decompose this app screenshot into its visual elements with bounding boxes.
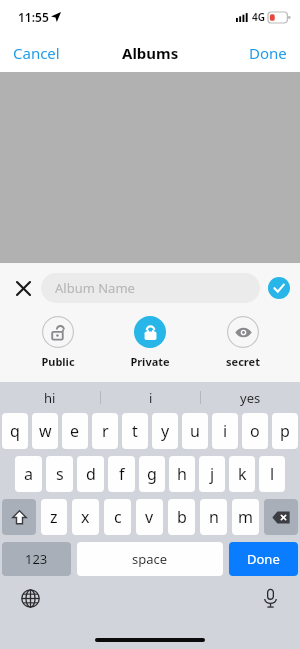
button[interactable]: space [77,542,223,576]
button[interactable]: i [212,413,238,449]
button[interactable]: Done [229,542,298,576]
staticText: e [70,420,80,442]
staticText: q [10,420,20,442]
button[interactable]: a [15,456,42,492]
staticText: l [270,463,275,485]
staticText: h [177,463,187,485]
button[interactable]: q [2,413,28,449]
button[interactable]: r [92,413,118,449]
staticText: z [50,506,58,528]
staticText: d [86,463,96,485]
button[interactable]: Backspace [264,499,298,535]
staticText: b [177,506,187,528]
button[interactable]: c [104,499,131,535]
button[interactable]: m [232,499,259,535]
staticText: p [280,420,290,442]
button[interactable]: j [199,456,225,492]
staticText: Private [130,354,170,369]
button[interactable]: Close [10,275,36,301]
staticText: Done [249,43,287,63]
button[interactable]: b [168,499,195,535]
button[interactable]: Shift [2,499,36,535]
button[interactable]: Change keyboard language [16,584,44,612]
staticText: Albums [122,43,179,63]
staticText: Done [247,550,280,568]
staticText: t [132,420,138,442]
button[interactable]: i [101,382,200,413]
staticText: g [147,463,157,485]
button[interactable]: Cancel [0,37,73,69]
staticText: 11:55 [18,9,49,25]
staticText: w [39,420,52,442]
staticText: f [119,463,125,485]
staticText: k [238,463,247,485]
staticText: 123 [25,550,48,568]
button[interactable]: l [259,456,285,492]
staticText: secret [226,354,260,369]
staticText: o [250,420,260,442]
button[interactable]: Private [115,316,185,369]
button[interactable]: yes [201,382,300,413]
button[interactable]: g [139,456,165,492]
button[interactable]: h [169,456,195,492]
staticText: i [149,389,153,407]
staticText: r [102,420,109,442]
button[interactable]: x [72,499,99,535]
button[interactable]: n [200,499,227,535]
staticText: m [238,506,253,528]
button[interactable]: d [77,456,104,492]
button[interactable]: secret [208,316,278,369]
staticText: hi [44,389,56,407]
staticText: s [56,463,64,485]
button[interactable]: k [229,456,255,492]
staticText: y [161,420,170,442]
staticText: yes [240,389,261,407]
staticText: j [210,463,215,485]
staticText: u [190,420,200,442]
button[interactable]: p [272,413,298,449]
button[interactable]: z [41,499,67,535]
staticText: n [209,506,219,528]
button[interactable]: hi [0,382,100,413]
staticText: space [132,550,168,568]
button[interactable]: t [122,413,148,449]
button[interactable]: s [46,456,73,492]
button[interactable]: u [182,413,208,449]
staticText: Public [41,354,75,369]
staticText: i [223,420,228,442]
staticText: x [81,506,90,528]
button[interactable]: Album Name [41,273,260,303]
staticText: 4G [252,10,265,24]
button[interactable]: v [136,499,163,535]
button[interactable]: y [152,413,178,449]
staticText: a [24,463,33,485]
button[interactable]: Public [23,316,93,369]
button[interactable]: Done [236,37,300,69]
button[interactable]: Confirm album name [268,277,290,299]
staticText: Album Name [55,279,135,297]
staticText: c [114,506,122,528]
button[interactable]: o [242,413,268,449]
button[interactable]: w [32,413,58,449]
button[interactable]: f [108,456,135,492]
staticText: Cancel [13,43,60,63]
button[interactable]: e [62,413,88,449]
button[interactable]: 123 [2,542,71,576]
button[interactable]: Dictation [256,584,284,612]
staticText: v [145,506,154,528]
